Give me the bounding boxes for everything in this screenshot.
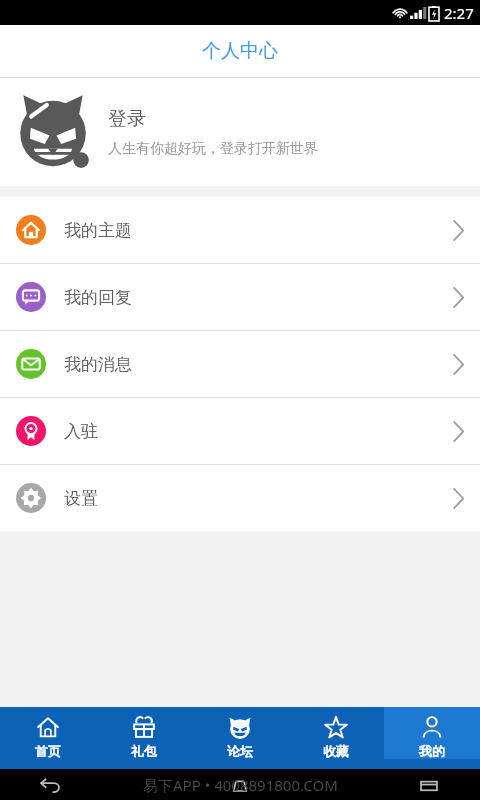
staticText: 收藏: [323, 743, 349, 759]
button[interactable]: 论坛: [192, 707, 288, 759]
button[interactable]: 收藏: [288, 707, 384, 759]
staticText: 论坛: [227, 743, 253, 759]
button[interactable]: 首页: [0, 707, 96, 759]
staticText: 我的回复: [64, 287, 132, 308]
button[interactable]: 我的回复: [0, 264, 480, 330]
button[interactable]: Home: [225, 774, 255, 796]
staticText: 2:27: [444, 3, 474, 23]
staticText: 我的: [419, 743, 445, 759]
button[interactable]: 设置: [0, 465, 480, 531]
staticText: 入驻: [64, 421, 98, 442]
button[interactable]: 入驻: [0, 398, 480, 464]
staticText: 易下APP • 4008891800.COM: [143, 775, 338, 795]
staticText: 设置: [64, 488, 98, 509]
staticText: 我的主题: [64, 220, 132, 241]
staticText: 人生有你超好玩，登录打开新世界: [108, 140, 318, 158]
button[interactable]: 登录: [0, 78, 480, 186]
staticText: 首页: [35, 743, 61, 759]
button[interactable]: Back: [36, 774, 66, 796]
button[interactable]: 我的主题: [0, 197, 480, 263]
staticText: 个人中心: [202, 39, 278, 63]
button[interactable]: 礼包: [96, 707, 192, 759]
button[interactable]: 我的消息: [0, 331, 480, 397]
button[interactable]: 我的: [384, 707, 480, 759]
staticText: 礼包: [131, 743, 157, 759]
staticText: 我的消息: [64, 354, 132, 375]
button[interactable]: Recents: [414, 774, 444, 796]
staticText: 登录: [108, 107, 146, 131]
